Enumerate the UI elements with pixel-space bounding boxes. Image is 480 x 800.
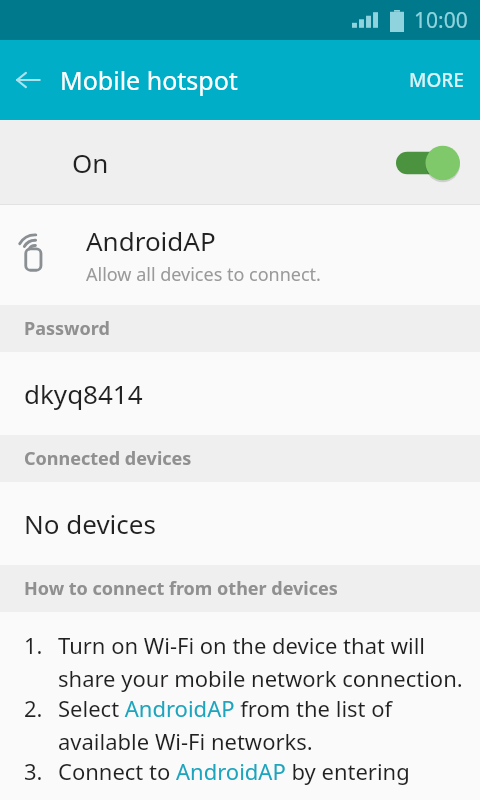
button[interactable]: On	[0, 120, 480, 205]
staticText: Mobile hotspot	[60, 63, 238, 97]
staticText: Connected devices	[24, 446, 192, 471]
staticText: Password	[24, 316, 110, 341]
button[interactable]: AndroidAP	[0, 205, 480, 305]
button[interactable]: MORE	[393, 53, 480, 107]
staticText: MORE	[409, 67, 464, 93]
staticText: 2.	[24, 693, 43, 723]
staticText: 10:00	[414, 6, 468, 35]
button[interactable]: No devices	[0, 482, 480, 565]
staticText: Turn on Wi-Fi on the device that will sh…	[58, 630, 468, 693]
other: Hotspot toggle	[396, 145, 460, 181]
staticText: No devices	[24, 506, 156, 541]
staticText: On	[72, 145, 109, 180]
staticText: How to connect from other devices	[24, 576, 338, 601]
staticText: 1.	[24, 630, 43, 660]
staticText: Allow all devices to connect.	[86, 262, 321, 287]
button[interactable]: dkyq8414	[0, 352, 480, 435]
staticText: Select AndroidAP from the list of availa…	[58, 693, 468, 756]
staticText: 3.	[24, 756, 43, 786]
button[interactable]: Back	[0, 52, 56, 108]
staticText: Connect to AndroidAP by entering	[58, 756, 410, 786]
staticText: AndroidAP	[86, 223, 216, 258]
staticText: dkyq8414	[24, 376, 143, 411]
